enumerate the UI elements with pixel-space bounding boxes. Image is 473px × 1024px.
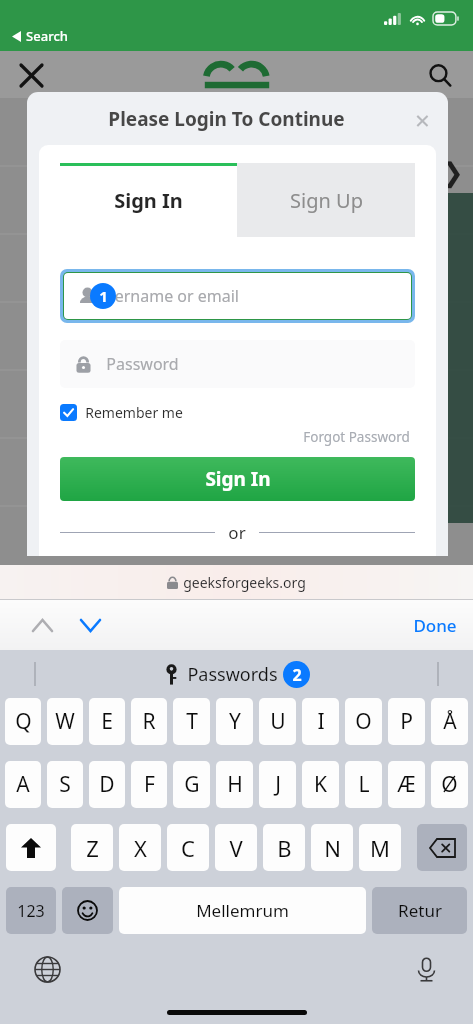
button[interactable]: geeksforgeeks.org xyxy=(0,565,473,599)
button[interactable]: C xyxy=(167,824,209,871)
button[interactable]: Search xyxy=(423,58,457,92)
staticText: M xyxy=(370,833,390,863)
button[interactable]: X xyxy=(119,824,161,871)
button[interactable]: Q xyxy=(5,698,41,745)
button[interactable]: Dismiss xyxy=(404,101,440,137)
button[interactable]: Forgot Password xyxy=(301,426,412,448)
button[interactable]: Emoji xyxy=(62,887,113,934)
button[interactable]: Dictation xyxy=(407,950,445,988)
staticText: B xyxy=(277,833,292,863)
staticText: Remember me xyxy=(85,403,183,422)
staticText: L xyxy=(358,770,370,799)
staticText: ❯ xyxy=(441,157,464,188)
button[interactable]: 123 xyxy=(6,887,56,934)
staticText: U xyxy=(270,707,286,736)
staticText: Password xyxy=(106,353,179,375)
button[interactable]: Sign In xyxy=(60,163,237,237)
staticText: Mellemrum xyxy=(196,899,289,922)
staticText: T xyxy=(186,707,198,736)
staticText: D xyxy=(99,770,115,799)
button[interactable]: Æ xyxy=(388,761,425,808)
staticText: Ø xyxy=(441,770,458,799)
staticText: 123 xyxy=(17,900,45,922)
button[interactable]: V xyxy=(215,824,257,871)
staticText: X xyxy=(134,833,147,863)
button[interactable]: N xyxy=(311,824,353,871)
button[interactable]: P xyxy=(388,698,425,745)
button[interactable]: Sign In xyxy=(60,457,415,501)
button[interactable]: M xyxy=(359,824,401,871)
button[interactable]: Close xyxy=(14,58,48,92)
button[interactable]: R xyxy=(131,698,167,745)
staticText: 1 xyxy=(99,286,108,306)
staticText: × xyxy=(415,102,430,137)
button[interactable]: Done xyxy=(397,604,473,647)
staticText: Retur xyxy=(398,899,442,922)
staticText: V xyxy=(229,833,243,863)
staticText: R xyxy=(142,707,156,736)
staticText: Z xyxy=(86,833,99,863)
button[interactable]: K xyxy=(302,761,339,808)
button[interactable]: sername or email xyxy=(77,273,411,319)
staticText: Search xyxy=(26,27,68,45)
button[interactable]: Mellemrum xyxy=(119,887,366,934)
staticText: Passwords xyxy=(187,662,278,687)
staticText: H xyxy=(227,770,243,799)
button[interactable]: I xyxy=(302,698,339,745)
staticText: O xyxy=(355,707,372,736)
staticText: Please Login To Continue xyxy=(108,106,345,132)
staticText: P xyxy=(400,707,413,736)
staticText: Sign In xyxy=(114,187,183,214)
staticText: S xyxy=(59,770,71,799)
staticText: or xyxy=(228,521,246,544)
staticText: Sign In xyxy=(205,466,271,492)
button[interactable]: Shift xyxy=(6,824,56,871)
staticText: G xyxy=(184,770,200,799)
button[interactable]: Previous field xyxy=(22,605,62,645)
button[interactable]: W xyxy=(47,698,83,745)
button[interactable]: Passwords xyxy=(164,661,310,688)
button[interactable]: O xyxy=(345,698,382,745)
staticText: E xyxy=(101,707,113,736)
button[interactable]: L xyxy=(345,761,382,808)
button[interactable]: H xyxy=(216,761,253,808)
staticText: sername or email xyxy=(107,285,239,307)
button[interactable]: Z xyxy=(71,824,113,871)
button[interactable]: Ø xyxy=(431,761,468,808)
staticText: J xyxy=(275,770,281,799)
button[interactable]: D xyxy=(89,761,125,808)
staticText: Å xyxy=(443,707,457,736)
staticText: Sign Up xyxy=(290,187,363,214)
button[interactable]: U xyxy=(259,698,296,745)
button[interactable]: Change keyboard xyxy=(28,950,66,988)
staticText: geeksforgeeks.org xyxy=(183,573,306,592)
staticText: C xyxy=(181,833,195,863)
staticText: I xyxy=(317,707,325,736)
staticText: Y xyxy=(229,707,241,736)
button[interactable]: E xyxy=(89,698,125,745)
button[interactable]: F xyxy=(131,761,167,808)
staticText: Æ xyxy=(397,770,416,799)
button[interactable]: Sign Up xyxy=(237,163,415,237)
button[interactable]: Next field xyxy=(70,605,110,645)
staticText: F xyxy=(144,770,155,799)
button[interactable]: Remember me xyxy=(60,403,183,422)
staticText: Q xyxy=(15,707,32,736)
button[interactable]: Password xyxy=(74,340,415,388)
button[interactable]: T xyxy=(173,698,210,745)
button[interactable]: G xyxy=(173,761,210,808)
button[interactable]: Y xyxy=(216,698,253,745)
button[interactable]: Backspace xyxy=(417,824,467,871)
staticText: K xyxy=(314,770,327,799)
staticText: W xyxy=(55,707,75,736)
staticText: A xyxy=(16,770,30,799)
button[interactable]: A xyxy=(5,761,41,808)
button[interactable]: Retur xyxy=(372,887,467,934)
button[interactable]: J xyxy=(259,761,296,808)
staticText: 2 xyxy=(292,664,302,686)
button[interactable]: Å xyxy=(431,698,468,745)
button[interactable]: S xyxy=(47,761,83,808)
button[interactable]: B xyxy=(263,824,305,871)
staticText: N xyxy=(324,833,341,863)
